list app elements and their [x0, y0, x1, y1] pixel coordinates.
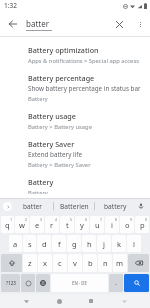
button[interactable]: b — [83, 254, 97, 272]
staticText: d — [42, 239, 47, 249]
button[interactable]: o — [120, 216, 134, 233]
button[interactable]: Battery percentage — [0, 69, 150, 107]
button[interactable]: i — [105, 216, 119, 233]
button[interactable]: w — [15, 216, 29, 233]
button[interactable]: y — [75, 216, 89, 233]
button[interactable]: Backspace — [128, 254, 149, 272]
staticText: Battery percentage — [28, 73, 95, 83]
staticText: batter — [26, 18, 49, 29]
staticText: e — [35, 220, 40, 230]
button[interactable]: p — [135, 216, 149, 233]
staticText: 3 — [40, 217, 43, 222]
button[interactable]: a — [9, 235, 22, 252]
button[interactable]: z — [23, 254, 37, 272]
staticText: a — [13, 239, 18, 249]
staticText: Extend battery life — [28, 150, 82, 159]
button[interactable]: v — [68, 254, 82, 272]
button[interactable]: d — [37, 235, 51, 252]
staticText: t — [66, 220, 69, 230]
button[interactable]: Voice input — [135, 198, 147, 214]
button[interactable]: Recents — [84, 294, 98, 308]
button[interactable]: Expand suggestions — [3, 202, 12, 211]
staticText: p — [140, 220, 145, 230]
staticText: Battery — [28, 189, 48, 194]
staticText: w — [19, 220, 25, 230]
staticText: Battery Saver — [28, 139, 75, 149]
staticText: f — [58, 239, 61, 249]
staticText: n — [103, 258, 108, 268]
button[interactable]: Back — [0, 11, 26, 37]
button[interactable]: r — [45, 216, 59, 233]
button[interactable]: Batterien — [54, 198, 94, 214]
button[interactable]: q — [1, 216, 14, 233]
staticText: Apps & notifications > Special app acces… — [28, 57, 139, 65]
staticText: x — [43, 258, 47, 268]
staticText: 6 — [85, 217, 88, 222]
staticText: c — [58, 258, 62, 268]
button[interactable]: Search — [124, 274, 149, 292]
staticText: q — [5, 220, 10, 230]
staticText: i — [111, 220, 113, 230]
button[interactable]: Emoji — [21, 274, 35, 292]
button[interactable]: g — [67, 235, 81, 252]
button[interactable]: Space — [51, 274, 108, 292]
staticText: Battery > Battery usage — [28, 123, 92, 131]
staticText: 8 — [115, 217, 118, 222]
staticText: z — [28, 258, 32, 268]
button[interactable]: f — [52, 235, 66, 252]
staticText: battery — [104, 202, 127, 211]
button[interactable]: u — [90, 216, 104, 233]
staticText: . — [115, 278, 117, 288]
button[interactable]: Symbols — [1, 274, 20, 292]
button[interactable]: m — [113, 254, 127, 272]
staticText: s — [28, 239, 32, 249]
button[interactable]: j — [97, 235, 111, 252]
staticText: 5 — [70, 217, 73, 222]
button[interactable]: n — [98, 254, 112, 272]
staticText: o — [125, 220, 130, 230]
staticText: batter — [23, 202, 42, 211]
button[interactable]: Hide keyboard — [117, 294, 131, 308]
button[interactable]: Battery optimization — [0, 41, 150, 69]
button[interactable]: e — [30, 216, 44, 233]
button[interactable]: Clear — [108, 13, 130, 35]
staticText: EN · DE — [72, 280, 87, 286]
button[interactable]: h — [82, 235, 96, 252]
button[interactable]: battery — [95, 198, 135, 214]
staticText: 0 — [145, 217, 148, 222]
staticText: Show battery percentage in status bar — [28, 84, 141, 93]
staticText: 1:32 — [4, 1, 17, 10]
staticText: b — [88, 258, 93, 268]
button[interactable]: k — [112, 235, 126, 252]
staticText: Battery usage — [28, 111, 76, 121]
staticText: Battery — [28, 177, 54, 187]
staticText: g — [72, 239, 77, 249]
button[interactable]: t — [60, 216, 74, 233]
staticText: 1 — [10, 217, 13, 222]
staticText: j — [103, 239, 105, 249]
button[interactable]: batter — [12, 198, 53, 214]
staticText: Battery > Battery Saver — [28, 161, 91, 169]
button[interactable]: x — [38, 254, 52, 272]
button[interactable]: . — [109, 274, 123, 292]
staticText: l — [133, 239, 135, 249]
button[interactable]: c — [53, 254, 67, 272]
staticText: Battery — [28, 95, 48, 103]
button[interactable]: Change language — [36, 274, 50, 292]
button[interactable]: Shift — [1, 254, 22, 272]
button[interactable]: More options — [130, 14, 150, 34]
staticText: ?123 — [6, 280, 16, 286]
button[interactable]: l — [127, 235, 141, 252]
staticText: v — [73, 258, 77, 268]
button[interactable]: Home — [52, 294, 66, 308]
button[interactable]: Battery — [0, 173, 150, 198]
staticText: 9 — [130, 217, 133, 222]
button[interactable]: Battery Saver — [0, 135, 150, 173]
button[interactable]: s — [23, 235, 36, 252]
staticText: 7 — [100, 217, 103, 222]
staticText: k — [117, 239, 122, 249]
staticText: Battery optimization — [28, 45, 99, 55]
button[interactable]: Back — [19, 294, 33, 308]
staticText: 2 — [25, 217, 28, 222]
button[interactable]: Battery usage — [0, 107, 150, 135]
